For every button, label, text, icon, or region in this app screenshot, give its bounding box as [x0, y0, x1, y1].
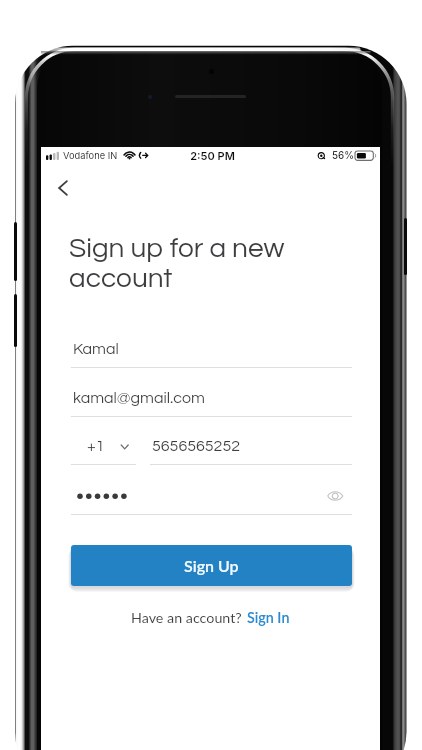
button[interactable]: Sign Up	[71, 545, 352, 586]
staticText: Have an account?	[131, 609, 242, 626]
staticText: Sign Up	[184, 556, 239, 575]
staticText: kamal@gmail.com	[73, 390, 205, 406]
staticText: 2:50 PM	[43, 149, 382, 162]
staticText: Vodafone IN	[63, 150, 118, 161]
button[interactable]: +1	[71, 436, 136, 465]
button[interactable]: Kamal	[71, 339, 352, 368]
staticText: 56%	[332, 150, 354, 162]
staticText: 5656565252	[152, 438, 241, 454]
staticText: +1	[87, 438, 105, 454]
button[interactable]: Sign In	[247, 609, 290, 626]
staticText: Sign In	[247, 609, 290, 626]
button[interactable]: kamal@gmail.com	[71, 388, 352, 417]
staticText: Sign up for a new account	[69, 234, 285, 293]
staticText: Kamal	[73, 341, 119, 357]
button[interactable]: Back	[46, 171, 80, 205]
button[interactable]: Show password	[321, 482, 349, 510]
